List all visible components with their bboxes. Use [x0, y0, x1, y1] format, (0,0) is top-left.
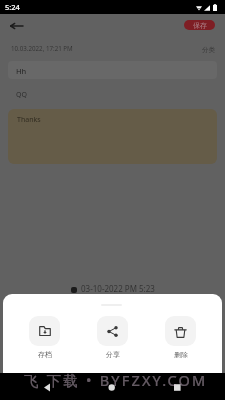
button[interactable]: Back [6, 16, 26, 36]
staticText: 飞 下载 • BYFZXY.COM [24, 370, 208, 390]
staticText: 10.03.2022, 17:21 PM [11, 44, 73, 52]
button[interactable]: Archive [29, 316, 60, 359]
staticText: 分享 [106, 350, 120, 359]
button[interactable]: 分类 [200, 44, 217, 56]
other: Share [97, 316, 128, 346]
button[interactable]: Share [97, 316, 128, 359]
other: Delete [165, 316, 196, 346]
staticText: Hh [16, 66, 27, 76]
staticText: 存档 [38, 350, 52, 359]
staticText: 分类 [202, 46, 215, 54]
staticText: QQ [16, 90, 27, 100]
button[interactable]: Delete [165, 316, 196, 359]
staticText: 03-10-2022 PM 5:23 [81, 283, 155, 294]
staticText: 5:24 [5, 2, 20, 12]
button[interactable]: 保存 [184, 20, 215, 30]
staticText: 删除 [174, 350, 188, 359]
staticText: Thanks [17, 115, 41, 125]
other: Archive [29, 316, 60, 346]
staticText: 保存 [193, 21, 207, 30]
